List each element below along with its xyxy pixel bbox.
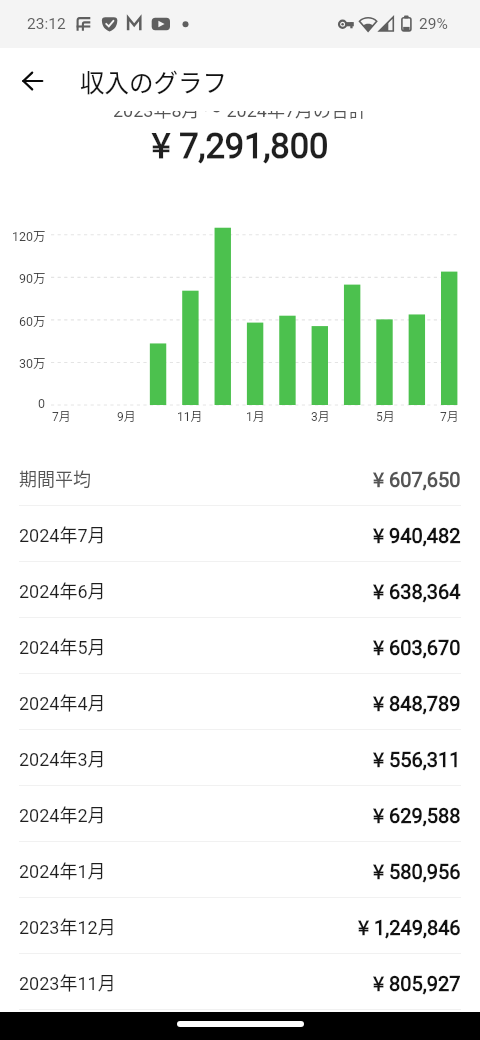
staticText: 0 [38,396,46,411]
staticText: ¥ 629,588 [373,800,461,829]
staticText: 120万 [12,226,46,244]
staticText: 期間平均 [19,465,91,491]
staticText: 2024年5月 [19,633,106,659]
staticText: ¥ 580,956 [373,856,461,885]
button[interactable]: 2024年3月 [0,730,480,786]
staticText: 2024年2月 [19,801,106,827]
staticText: ¥ 603,670 [373,632,461,661]
staticText: 2024年7月 [19,521,106,547]
staticText: 2024年1月 [19,857,106,883]
staticText: 収入のグラフ [80,64,227,99]
staticText: ¥ 7,291,800 [0,118,480,168]
staticText: 7月 [440,407,459,424]
button[interactable]: 2024年5月 [0,618,480,674]
button[interactable]: 2024年4月 [0,674,480,730]
button[interactable]: 2024年7月 [0,506,480,562]
staticText: 2023年8月 〜 2024年7月の合計 [0,96,480,122]
staticText: 60万 [19,311,46,329]
staticText: ¥ 1,249,846 [358,912,461,941]
button[interactable]: Back [10,59,54,103]
button[interactable]: 期間平均 [0,450,480,506]
staticText: 29% [419,15,448,33]
staticText: 2024年4月 [19,689,106,715]
button[interactable]: 2024年6月 [0,562,480,618]
staticText: 11月 [177,407,203,424]
staticText: 2023年12月 [19,913,116,939]
staticText: 3月 [311,407,330,424]
button[interactable]: 2023年12月 [0,898,480,954]
staticText: 90万 [19,268,46,286]
button[interactable]: 2023年11月 [0,954,480,1010]
staticText: 5月 [376,407,395,424]
staticText: 23:12 [27,15,66,33]
staticText: ¥ 638,364 [373,576,461,605]
staticText: ¥ 805,927 [373,968,461,997]
staticText: ¥ 848,789 [373,688,461,717]
staticText: ¥ 556,311 [373,744,461,773]
staticText: 2023年11月 [19,969,116,995]
staticText: ¥ 607,650 [373,464,461,493]
staticText: 30万 [19,353,46,371]
staticText: 7月 [52,407,71,424]
staticText: ¥ 940,482 [373,520,461,549]
button[interactable]: 2024年1月 [0,842,480,898]
button[interactable]: 2024年2月 [0,786,480,842]
staticText: 2024年6月 [19,577,106,603]
staticText: 1月 [246,407,265,424]
staticText: 9月 [117,407,136,424]
staticText: 2024年3月 [19,745,106,771]
